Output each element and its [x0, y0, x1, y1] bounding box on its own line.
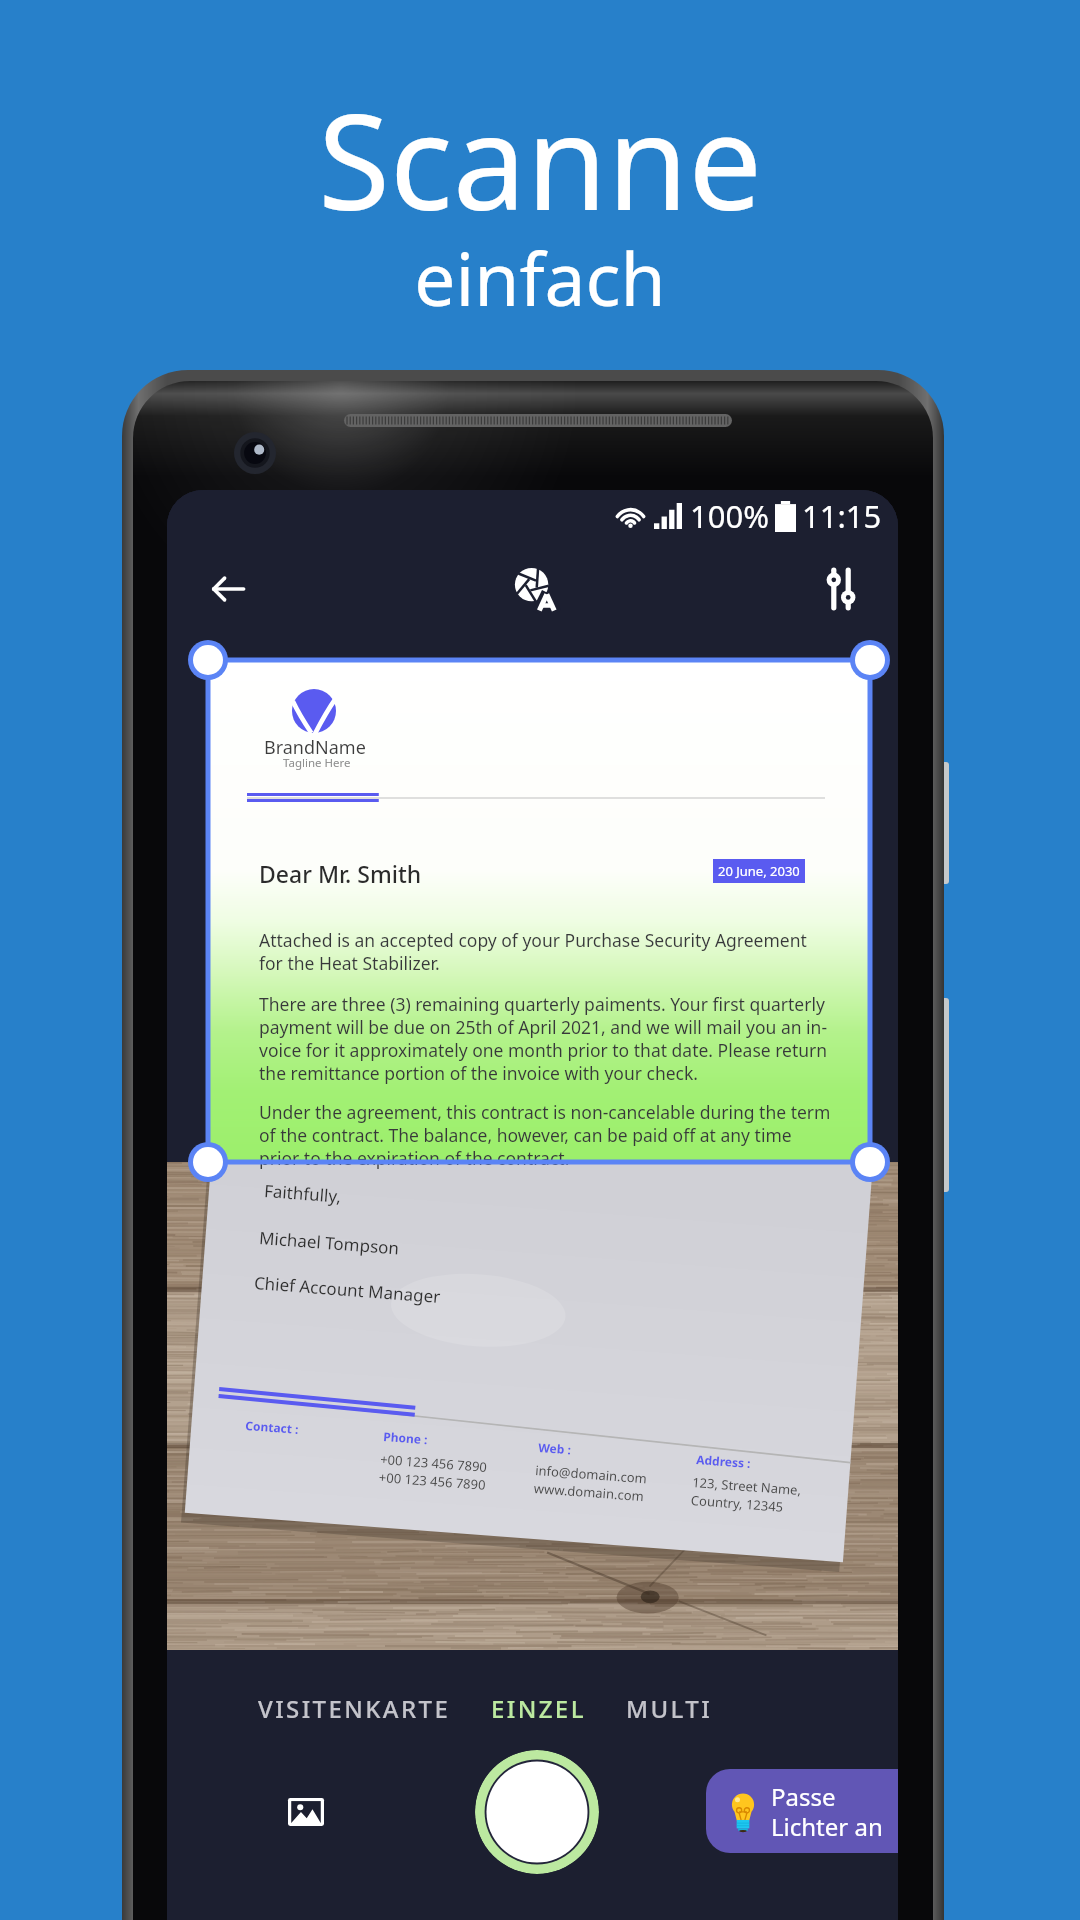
staticText: VISITENKARTE [258, 1692, 451, 1725]
button[interactable]: MULTI [621, 1686, 718, 1731]
staticText: info@domain.com www.domain.com [533, 1461, 648, 1505]
button[interactable]: Back [199, 556, 265, 622]
staticText: EINZEL [491, 1692, 586, 1725]
staticText: 20 June, 2030 [718, 862, 800, 880]
staticText: Faithfully, [263, 1179, 343, 1208]
button[interactable]: Settings [808, 556, 874, 622]
staticText: Michael Tompson [258, 1226, 401, 1259]
staticText: MULTI [626, 1692, 713, 1725]
button[interactable]: EINZEL [486, 1686, 591, 1731]
button[interactable]: Flash auto [503, 556, 569, 622]
button[interactable]: VISITENKARTE [253, 1686, 456, 1731]
staticText: Attached is an accepted copy of your Pur… [259, 928, 807, 976]
button[interactable]: Gallery [274, 1780, 338, 1844]
staticText: 123, Street Name, Country, 12345 [690, 1473, 802, 1517]
button[interactable]: Capture [475, 1750, 599, 1874]
staticText: BrandName [264, 735, 366, 760]
staticText: +00 123 456 7890 +00 123 456 7890 [378, 1450, 488, 1494]
staticText: Chief Account Manager [253, 1271, 441, 1308]
staticText: 11:15 [802, 495, 882, 537]
staticText: 100% [690, 495, 769, 537]
staticText: Tagline Here [283, 755, 351, 771]
button[interactable]: Passe Lichter an [706, 1769, 898, 1853]
staticText: Phone : [383, 1428, 429, 1447]
staticText: Dear Mr. Smith [259, 858, 422, 889]
staticText: Under the agreement, this contract is no… [259, 1100, 831, 1171]
staticText: Web : [538, 1439, 572, 1457]
staticText: Scanne [0, 70, 1080, 248]
staticText: There are three (3) remaining quarterly … [259, 992, 828, 1086]
staticText: Contact : [245, 1417, 300, 1437]
staticText: Passe Lichter an [771, 1780, 883, 1843]
staticText: Address : [696, 1451, 752, 1471]
staticText: einfach [0, 228, 1080, 327]
